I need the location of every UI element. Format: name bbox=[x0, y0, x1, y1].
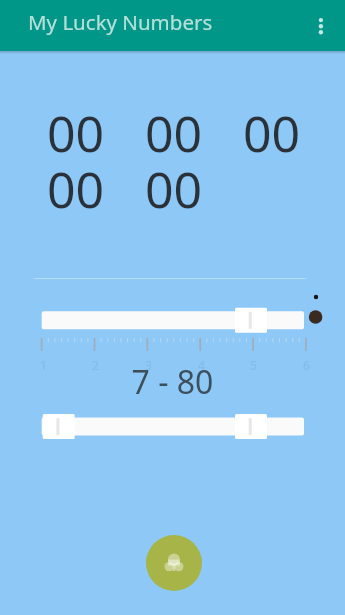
staticText: 5 bbox=[250, 357, 257, 373]
staticText: 00 bbox=[47, 99, 105, 167]
staticText: 6 bbox=[303, 357, 310, 373]
staticText: 00 bbox=[47, 155, 105, 223]
button[interactable]: More options bbox=[297, 2, 345, 50]
staticText: 00 bbox=[243, 99, 301, 167]
staticText: My Lucky Numbers bbox=[28, 8, 213, 36]
staticText: 7 - 80 bbox=[0, 360, 345, 404]
staticText: 2 bbox=[92, 357, 99, 373]
button[interactable]: Generate lucky numbers bbox=[146, 535, 202, 591]
staticText: 1 bbox=[40, 357, 47, 373]
staticText: 4 bbox=[198, 357, 205, 373]
staticText: 3 bbox=[145, 357, 152, 373]
staticText: 00 bbox=[145, 155, 203, 223]
staticText: 00 bbox=[145, 99, 203, 167]
